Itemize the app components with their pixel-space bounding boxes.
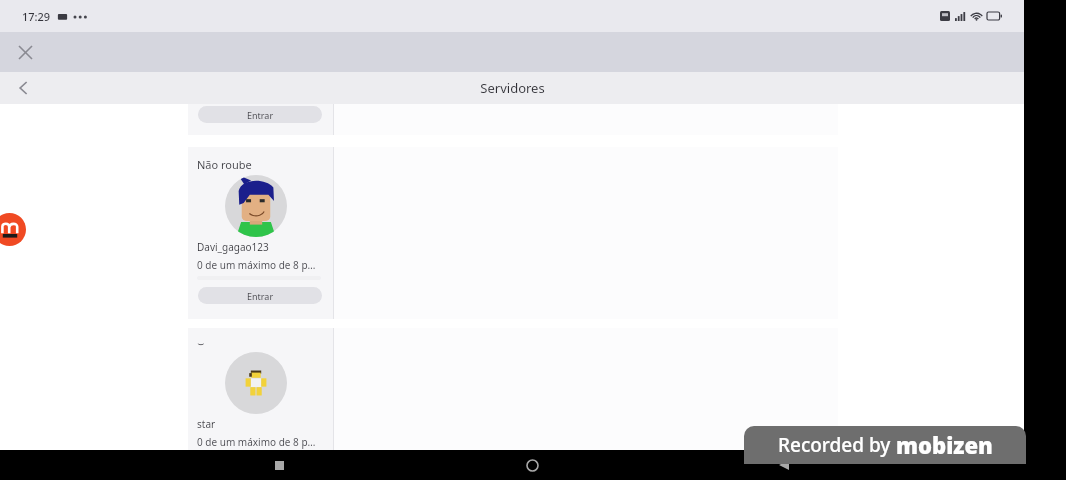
staticText: mobizen [896, 430, 993, 460]
staticText: ⌣ [197, 338, 205, 349]
staticText: 0 de um máximo de 8 p… [197, 258, 316, 272]
button[interactable]: Entrar [198, 106, 322, 123]
button[interactable]: Home [520, 450, 544, 480]
staticText: Entrar [247, 109, 274, 121]
staticText: Servidores [480, 79, 545, 97]
staticText: Entrar [247, 290, 274, 302]
staticText: 0 de um máximo de 8 p… [197, 435, 316, 449]
button[interactable]: ⌣ [188, 328, 838, 474]
staticText: Recorded by [778, 432, 896, 458]
button[interactable]: Close [8, 35, 42, 69]
button[interactable]: Back [8, 72, 40, 104]
button[interactable]: Não roube [188, 147, 838, 319]
staticText: 17:29 [22, 9, 51, 24]
staticText: Davi_gagao123 [197, 240, 269, 254]
staticText: star [197, 417, 216, 431]
button[interactable]: Recents [268, 450, 290, 480]
button[interactable]: Entrar [198, 287, 322, 304]
staticText: Não roube [197, 157, 252, 172]
button[interactable]: Back [772, 450, 796, 480]
